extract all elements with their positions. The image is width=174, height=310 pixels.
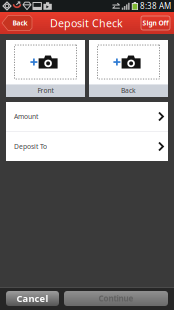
staticText: Back [12, 19, 27, 27]
staticText: Deposit Check [50, 16, 123, 30]
button[interactable]: Cancel [6, 291, 59, 306]
button[interactable]: Back [2, 15, 32, 30]
staticText: Sign Off [142, 19, 168, 27]
staticText: Deposit To [14, 142, 47, 151]
staticText: 8:38 AM [140, 1, 171, 11]
button[interactable]: Capture Back [89, 40, 168, 97]
button[interactable]: Capture Front [6, 40, 85, 97]
button[interactable]: Deposit To [6, 132, 168, 161]
staticText: Cancel [16, 292, 48, 305]
button[interactable]: Amount [6, 102, 168, 131]
staticText: Continue [98, 293, 133, 304]
staticText: Back [121, 86, 136, 95]
button[interactable]: Sign Off [141, 16, 170, 30]
button[interactable]: Continue [64, 291, 168, 306]
staticText: Amount [14, 112, 38, 121]
staticText: Front [37, 86, 53, 95]
